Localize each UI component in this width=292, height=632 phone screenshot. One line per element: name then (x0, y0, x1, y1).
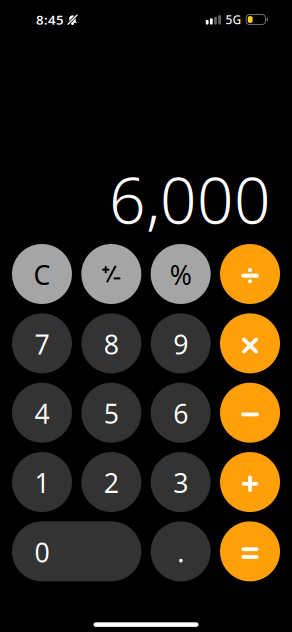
staticText: 6,000 (109, 156, 271, 241)
staticText: 3 (173, 465, 188, 500)
staticText: 5G (225, 11, 241, 27)
button[interactable]: Equals (220, 521, 280, 581)
staticText: 8:45 (36, 11, 64, 28)
staticText: 2 (104, 465, 119, 500)
staticText: 6 (173, 396, 188, 431)
button[interactable]: Clear (12, 244, 72, 304)
button[interactable]: 2 (81, 452, 141, 512)
staticText: 1 (34, 465, 49, 500)
staticText: 0 (34, 534, 49, 570)
staticText: 7 (34, 326, 49, 362)
button[interactable]: 4 (12, 383, 72, 443)
button[interactable]: Subtract (220, 383, 280, 443)
staticText: % (170, 257, 192, 292)
staticText: 5 (104, 396, 119, 431)
button[interactable]: Percent (151, 244, 211, 304)
button[interactable]: 5 (81, 383, 141, 443)
button[interactable]: Add (220, 452, 280, 512)
staticText: 8 (104, 326, 119, 362)
button[interactable]: 1 (12, 452, 72, 512)
staticText: . (177, 534, 184, 570)
button[interactable]: 7 (12, 313, 72, 373)
button[interactable]: Plus minus (81, 244, 141, 304)
button[interactable]: Divide (220, 244, 280, 304)
button[interactable]: 0 (12, 521, 141, 581)
button[interactable]: 6 (151, 383, 211, 443)
button[interactable]: 9 (151, 313, 211, 373)
button[interactable]: Multiply (220, 313, 280, 373)
button[interactable]: 8 (81, 313, 141, 373)
staticText: C (33, 257, 50, 292)
staticText: 4 (34, 396, 49, 431)
button[interactable]: Decimal point (151, 521, 211, 581)
button[interactable]: 3 (151, 452, 211, 512)
staticText: 9 (173, 326, 188, 362)
